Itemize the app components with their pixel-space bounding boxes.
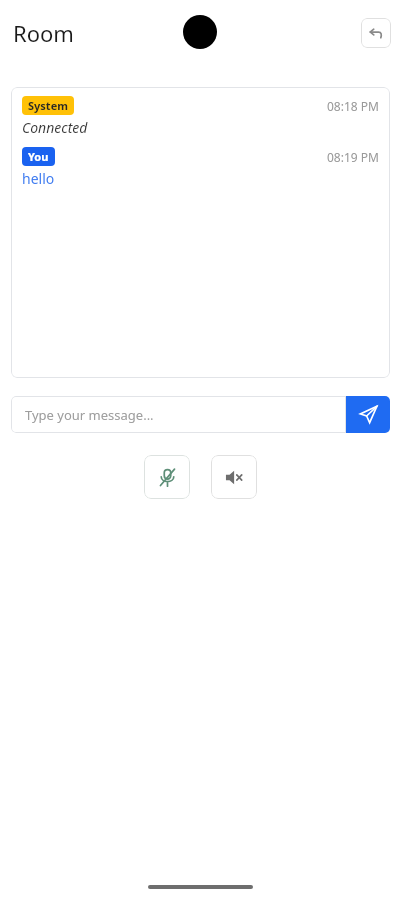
button[interactable]: Send (346, 396, 390, 433)
staticText: 08:18 PM (327, 98, 379, 114)
button[interactable]: Mute speaker (211, 455, 257, 499)
staticText: Connected (22, 118, 88, 137)
button[interactable]: Mute microphone (144, 455, 190, 499)
staticText: You (28, 149, 49, 164)
button[interactable]: Back (361, 18, 391, 48)
staticText: hello (22, 169, 55, 188)
staticText: Type your message... (25, 406, 154, 424)
staticText: System (28, 98, 68, 113)
staticText: Room (13, 18, 74, 48)
button[interactable]: Type your message... (11, 396, 346, 433)
staticText: 08:19 PM (327, 149, 379, 165)
